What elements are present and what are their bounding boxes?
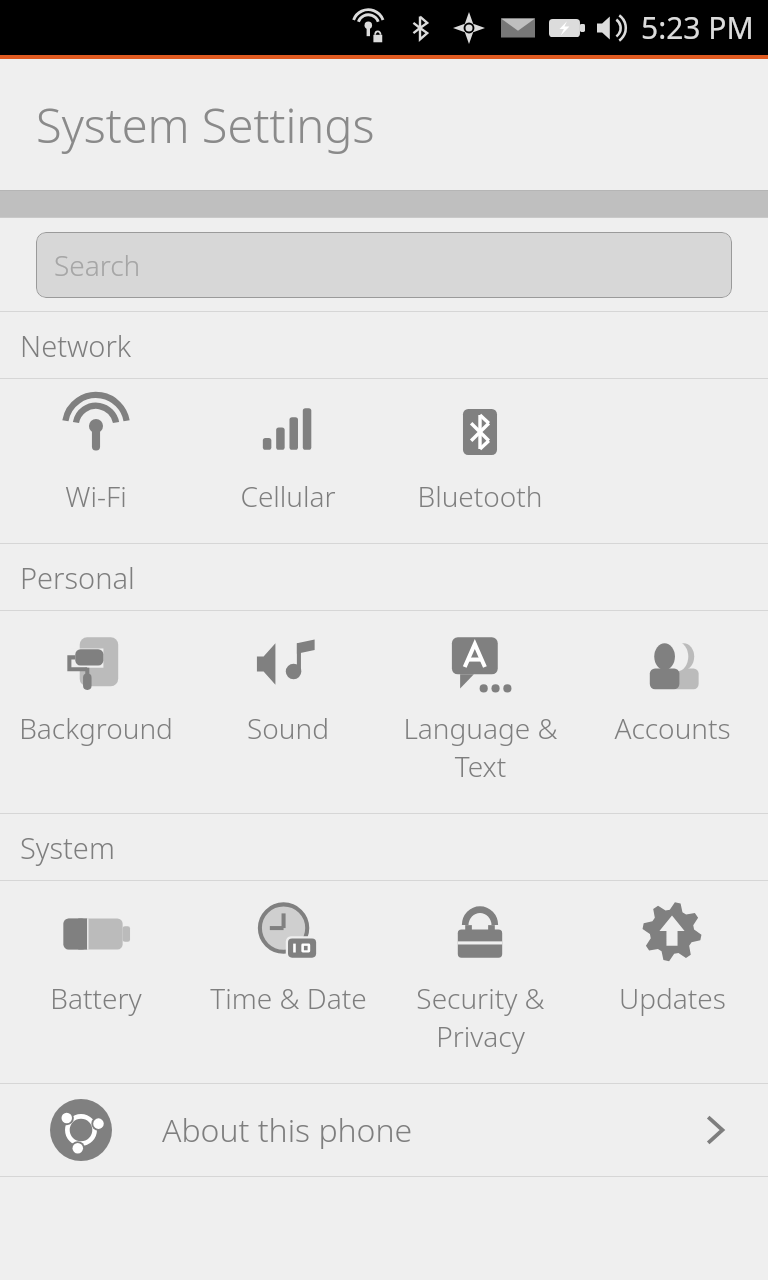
staticText: Accounts [614, 709, 731, 747]
button[interactable]: Bluetooth [384, 379, 576, 543]
button[interactable]: Background [0, 611, 192, 813]
staticText: Background [19, 709, 173, 747]
staticText: 5:23 PM [641, 7, 754, 48]
staticText: Sound [247, 709, 329, 747]
staticText: Bluetooth [417, 477, 543, 515]
staticText: Network [20, 326, 132, 365]
button[interactable]: Sound [192, 611, 384, 813]
staticText: About this phone [162, 1108, 413, 1152]
other: Open About this phone [698, 1113, 732, 1147]
staticText: System Settings [36, 93, 375, 157]
button[interactable]: Time & Date [192, 881, 384, 1083]
staticText: System [20, 828, 115, 867]
staticText: Search [54, 246, 141, 284]
staticText: Security & Privacy [416, 979, 545, 1055]
button[interactable]: Updates [576, 881, 768, 1083]
button[interactable]: Wi-Fi [0, 379, 192, 543]
button[interactable]: Search [36, 232, 732, 298]
staticText: Time & Date [210, 979, 367, 1017]
button[interactable]: Language & Text [384, 611, 576, 813]
button[interactable]: Battery [0, 881, 192, 1083]
button[interactable]: Security & Privacy [384, 881, 576, 1083]
staticText: Battery [50, 979, 142, 1017]
staticText: Updates [619, 979, 726, 1017]
button[interactable]: About this phone [0, 1084, 768, 1176]
staticText: Language & Text [403, 709, 558, 785]
button[interactable]: Accounts [576, 611, 768, 813]
staticText: Personal [20, 558, 135, 597]
button[interactable]: Cellular [192, 379, 384, 543]
staticText: Cellular [240, 477, 336, 515]
staticText: Wi-Fi [65, 477, 127, 515]
